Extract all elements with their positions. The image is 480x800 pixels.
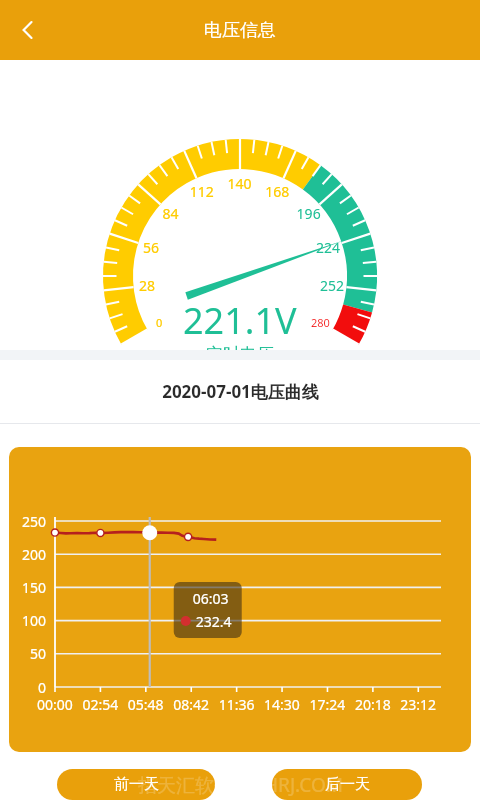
- button[interactable]: Back: [0, 2, 56, 58]
- staticText: 指天汇软件 · ZJHRJ.COM: [138, 772, 343, 798]
- button[interactable]: 后一天: [272, 769, 422, 800]
- staticText: 2020-07-01电压曲线: [162, 380, 319, 403]
- staticText: 电压信息: [204, 19, 276, 42]
- button[interactable]: 前一天: [57, 769, 215, 800]
- staticText: 后一天: [325, 775, 370, 794]
- staticText: 前一天: [114, 775, 159, 794]
